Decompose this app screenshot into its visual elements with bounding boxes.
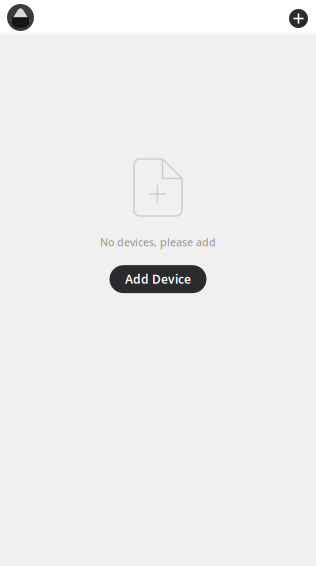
button[interactable]: Profile	[0, 0, 42, 31]
staticText: No devices, please add	[100, 235, 216, 249]
button[interactable]: Add device	[279, 0, 316, 31]
staticText: Add Device	[125, 271, 191, 287]
button[interactable]: Add Device	[109, 265, 206, 293]
